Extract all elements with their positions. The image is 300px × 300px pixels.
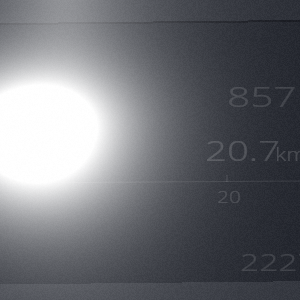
staticText: 2227 <box>240 245 300 278</box>
staticText: km <box>275 141 300 167</box>
button[interactable]: Instrument cluster display <box>0 0 300 300</box>
staticText: 20.7 <box>205 131 280 169</box>
staticText: 8571 <box>227 77 300 115</box>
staticText: 20 <box>217 186 242 208</box>
